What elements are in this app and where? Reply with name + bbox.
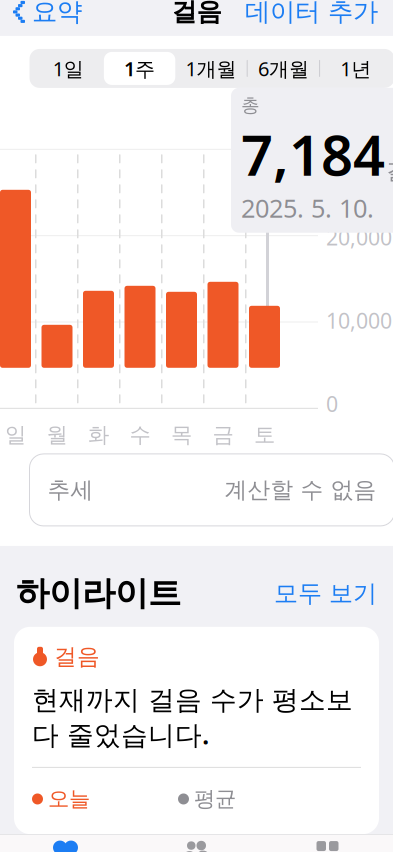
staticText: 걸음 bbox=[54, 643, 100, 671]
staticText: 1년 bbox=[340, 55, 371, 82]
staticText: 30,000 bbox=[326, 140, 392, 168]
button[interactable]: 데이터 추가 bbox=[245, 0, 393, 35]
staticText: 걸음 bbox=[386, 157, 393, 185]
staticText: 금 bbox=[212, 422, 233, 448]
staticText: 월 bbox=[46, 422, 67, 448]
button[interactable]: 1주 bbox=[104, 52, 175, 85]
staticText: 0 bbox=[326, 389, 338, 418]
staticText: 오늘 bbox=[48, 786, 90, 812]
staticText: 토 bbox=[254, 422, 275, 448]
staticText: 현재까지 걸음 수가 평소보다 줄었습니다. bbox=[32, 684, 353, 752]
staticText: 1개월 bbox=[185, 55, 236, 82]
staticText: 평균 bbox=[194, 786, 236, 812]
button[interactable]: 6개월 bbox=[248, 52, 319, 85]
staticText: 하이라이트 bbox=[16, 573, 181, 614]
staticText: 목 bbox=[171, 422, 192, 448]
button[interactable]: 1일 bbox=[32, 52, 104, 85]
staticText: 1주 bbox=[124, 55, 155, 82]
staticText: 1일 bbox=[53, 55, 84, 82]
staticText: 계산할 수 없음 bbox=[224, 476, 376, 504]
staticText: 추세 bbox=[47, 476, 93, 504]
staticText: 데이터 추가 bbox=[245, 0, 378, 27]
button[interactable]: 1년 bbox=[320, 52, 391, 85]
button[interactable]: 1개월 bbox=[175, 52, 247, 85]
button[interactable]: 요약 bbox=[0, 0, 82, 35]
staticText: 요약 bbox=[32, 0, 82, 27]
staticText: 걸음 bbox=[171, 0, 221, 27]
button[interactable]: 걸음 bbox=[14, 627, 379, 834]
staticText: 모두 보기 bbox=[274, 579, 377, 608]
staticText: 총 bbox=[241, 94, 260, 117]
staticText: 수 bbox=[129, 422, 150, 448]
staticText: 일 bbox=[5, 422, 26, 448]
button[interactable]: 모두 보기 bbox=[274, 579, 377, 608]
button[interactable]: 공유 bbox=[131, 834, 262, 852]
staticText: 20,000 bbox=[326, 223, 392, 251]
staticText: 10,000 bbox=[326, 306, 392, 335]
staticText: 2025. 5. 10. bbox=[241, 191, 374, 225]
button[interactable]: 추세 bbox=[29, 454, 393, 526]
staticText: 7,184 bbox=[241, 117, 385, 191]
staticText: 6개월 bbox=[258, 55, 309, 82]
button[interactable]: 둘러보기 bbox=[262, 834, 393, 852]
staticText: 화 bbox=[88, 422, 109, 448]
button[interactable]: 요약 bbox=[0, 834, 131, 852]
